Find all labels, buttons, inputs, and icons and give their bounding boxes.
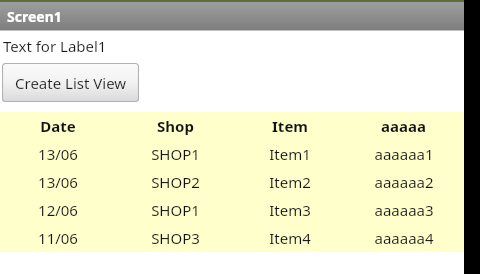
staticText: Item4 — [269, 228, 311, 248]
staticText: Item3 — [269, 200, 311, 220]
staticText: Item1 — [269, 144, 311, 164]
staticText: Date — [40, 116, 76, 136]
button[interactable]: Create List View — [2, 63, 139, 102]
staticText: Screen1 — [7, 7, 62, 26]
staticText: aaaaa — [381, 116, 426, 136]
staticText: Text for Label1 — [3, 36, 107, 56]
staticText: SHOP3 — [151, 228, 200, 248]
staticText: SHOP1 — [151, 200, 200, 220]
staticText: Item — [272, 116, 308, 136]
staticText: aaaaaa1 — [374, 144, 434, 164]
staticText: aaaaaa3 — [374, 200, 434, 220]
button[interactable]: 13/06 — [0, 168, 464, 196]
button[interactable]: 11/06 — [0, 224, 464, 252]
button[interactable]: 12/06 — [0, 196, 464, 224]
staticText: 12/06 — [38, 200, 78, 220]
staticText: 13/06 — [38, 144, 78, 164]
staticText: 11/06 — [38, 228, 78, 248]
staticText: Item2 — [269, 172, 311, 192]
staticText: 13/06 — [38, 172, 78, 192]
staticText: aaaaaa2 — [374, 172, 434, 192]
staticText: SHOP1 — [151, 144, 200, 164]
staticText: Shop — [157, 116, 194, 136]
staticText: aaaaaa4 — [374, 228, 434, 248]
button[interactable]: Date — [0, 112, 464, 140]
button[interactable]: 13/06 — [0, 140, 464, 168]
staticText: SHOP2 — [151, 172, 200, 192]
staticText: Create List View — [15, 73, 127, 93]
